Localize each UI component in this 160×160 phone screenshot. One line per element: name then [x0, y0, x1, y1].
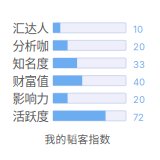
staticText: 影响力: [12, 89, 48, 107]
staticText: 72: [133, 112, 144, 123]
button[interactable]: 财富值: [12, 72, 153, 89]
button[interactable]: 知名度: [12, 54, 153, 72]
button[interactable]: 影响力: [12, 89, 153, 107]
staticText: 财富值: [12, 72, 48, 90]
staticText: 我的韬客指数: [44, 131, 110, 146]
staticText: 40: [133, 76, 145, 88]
staticText: 33: [133, 59, 145, 70]
staticText: 活跃度: [12, 107, 48, 125]
staticText: 汇达人: [12, 19, 48, 37]
staticText: 知名度: [12, 54, 48, 72]
button[interactable]: 活跃度: [12, 107, 153, 125]
button[interactable]: 分析咖: [12, 37, 153, 54]
staticText: 10: [133, 24, 143, 35]
staticText: 20: [133, 94, 145, 105]
staticText: 20: [133, 41, 145, 53]
button[interactable]: 汇达人: [12, 19, 153, 37]
staticText: 分析咖: [12, 36, 48, 54]
